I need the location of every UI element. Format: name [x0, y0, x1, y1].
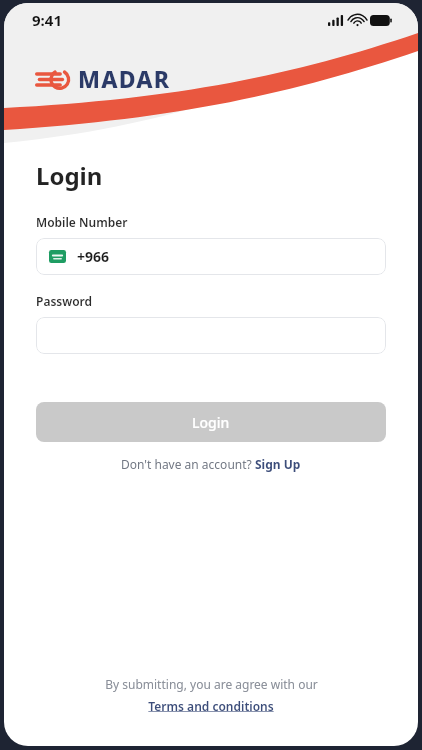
- staticText: Login: [36, 159, 103, 192]
- button[interactable]: Sign Up: [255, 456, 301, 472]
- button[interactable]: [36, 317, 386, 354]
- staticText: By submitting, you are agree with our: [105, 676, 318, 692]
- staticText: +966: [77, 247, 110, 266]
- staticText: Sign Up: [255, 456, 301, 472]
- staticText: Terms and conditions: [148, 698, 274, 714]
- staticText: Login: [192, 413, 230, 432]
- button[interactable]: +966: [36, 238, 386, 275]
- button[interactable]: Terms and conditions: [148, 698, 274, 714]
- staticText: MADAR: [78, 63, 171, 94]
- staticText: 9:41: [32, 10, 62, 30]
- staticText: Don't have an account?: [121, 456, 255, 472]
- staticText: Password: [36, 293, 93, 309]
- staticText: Mobile Number: [36, 214, 128, 230]
- button[interactable]: Login: [36, 402, 386, 442]
